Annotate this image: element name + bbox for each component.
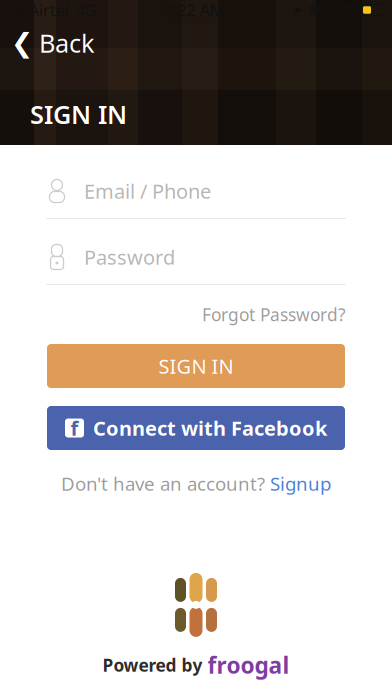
button[interactable]: Forgot Password? <box>202 298 346 331</box>
staticText: f <box>70 415 78 441</box>
staticText: Signup <box>270 471 331 496</box>
staticText: Forgot Password? <box>202 303 346 326</box>
staticText: Powered by <box>102 653 202 676</box>
staticText: Don't have an account? <box>61 471 265 496</box>
staticText: Password <box>84 244 175 270</box>
staticText: Connect with Facebook <box>93 415 327 441</box>
staticText: ➤ <box>292 2 303 17</box>
staticText: 4G <box>76 0 97 21</box>
button[interactable]: ❮ <box>0 20 107 66</box>
staticText: ✻ <box>308 2 320 18</box>
staticText: ❮ <box>11 28 33 58</box>
button[interactable]: Don't have an account? <box>53 465 339 502</box>
staticText: Airtel <box>29 0 69 21</box>
staticText: froogal <box>207 650 289 680</box>
button[interactable]: SIGN IN <box>47 344 345 388</box>
staticText: SIGN IN <box>30 97 127 131</box>
staticText: SIGN IN <box>158 353 233 379</box>
staticText: Back <box>39 26 95 60</box>
staticText: 7:22 AM <box>164 0 224 21</box>
button[interactable]: f <box>47 406 345 450</box>
staticText: Email / Phone <box>84 178 211 204</box>
